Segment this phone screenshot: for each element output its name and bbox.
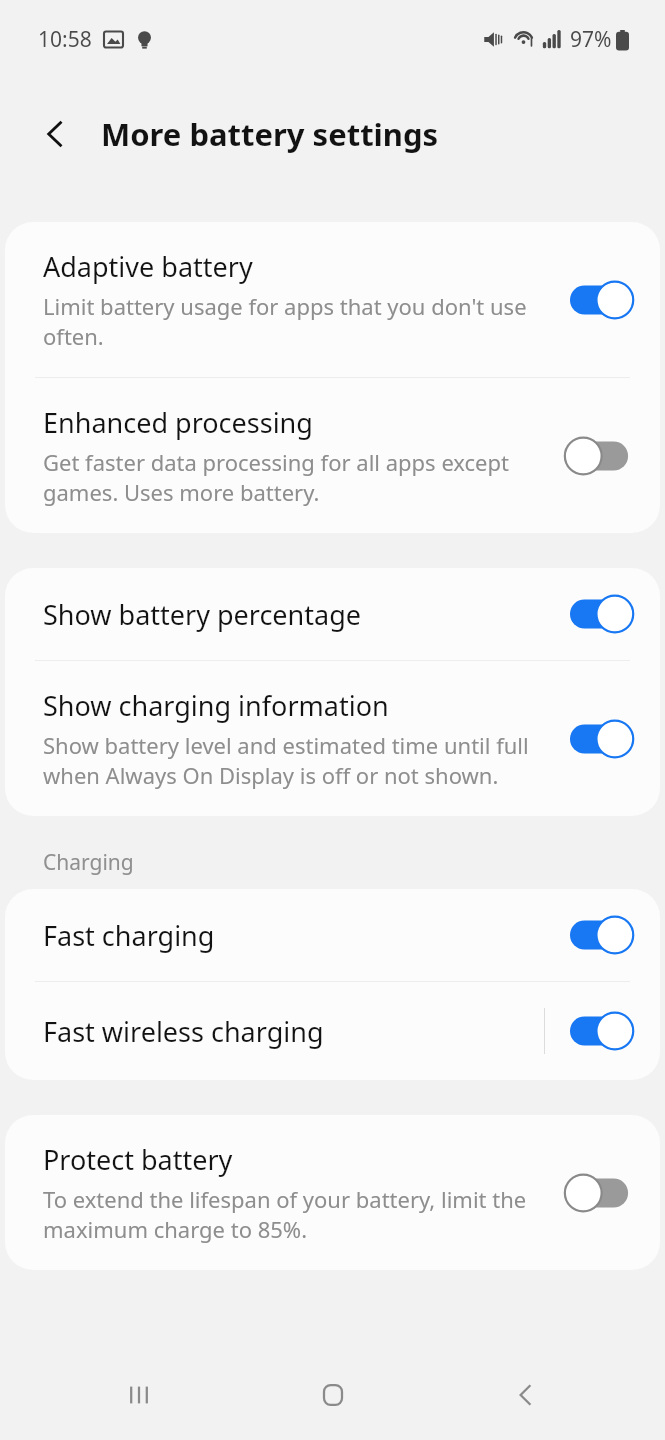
- staticText: Fast wireless charging: [43, 1013, 324, 1050]
- button[interactable]: On: [570, 719, 636, 759]
- staticText: 97%: [570, 25, 612, 54]
- button[interactable]: Adaptive battery: [5, 222, 660, 377]
- button[interactable]: Home: [278, 1350, 388, 1440]
- staticText: Show charging information: [43, 687, 389, 724]
- button[interactable]: Show battery percentage: [5, 568, 660, 660]
- button[interactable]: Show charging information: [5, 661, 660, 816]
- staticText: Get faster data processing for all apps …: [43, 447, 544, 507]
- button[interactable]: Back: [28, 106, 84, 162]
- button[interactable]: On: [570, 1011, 636, 1051]
- button[interactable]: Fast charging: [5, 889, 660, 981]
- button[interactable]: On: [570, 915, 636, 955]
- button[interactable]: Off: [570, 1173, 636, 1213]
- staticText: Show battery level and estimated time un…: [43, 730, 544, 790]
- button[interactable]: Off: [570, 436, 636, 476]
- staticText: Enhanced processing: [43, 404, 313, 441]
- button[interactable]: Back: [471, 1350, 581, 1440]
- staticText: Protect battery: [43, 1141, 233, 1178]
- button[interactable]: Recent apps: [84, 1350, 194, 1440]
- staticText: To extend the lifespan of your battery, …: [43, 1184, 544, 1244]
- staticText: 10:58: [38, 25, 92, 54]
- staticText: Fast charging: [43, 917, 215, 954]
- staticText: More battery settings: [101, 113, 439, 155]
- staticText: Adaptive battery: [43, 248, 253, 285]
- button[interactable]: Enhanced processing: [5, 378, 660, 533]
- staticText: Charging: [43, 848, 134, 877]
- staticText: Limit battery usage for apps that you do…: [43, 291, 544, 351]
- staticText: Show battery percentage: [43, 596, 362, 633]
- button[interactable]: On: [570, 280, 636, 320]
- button[interactable]: Fast wireless charging: [5, 982, 660, 1080]
- button[interactable]: On: [570, 594, 636, 634]
- button[interactable]: Protect battery: [5, 1115, 660, 1270]
